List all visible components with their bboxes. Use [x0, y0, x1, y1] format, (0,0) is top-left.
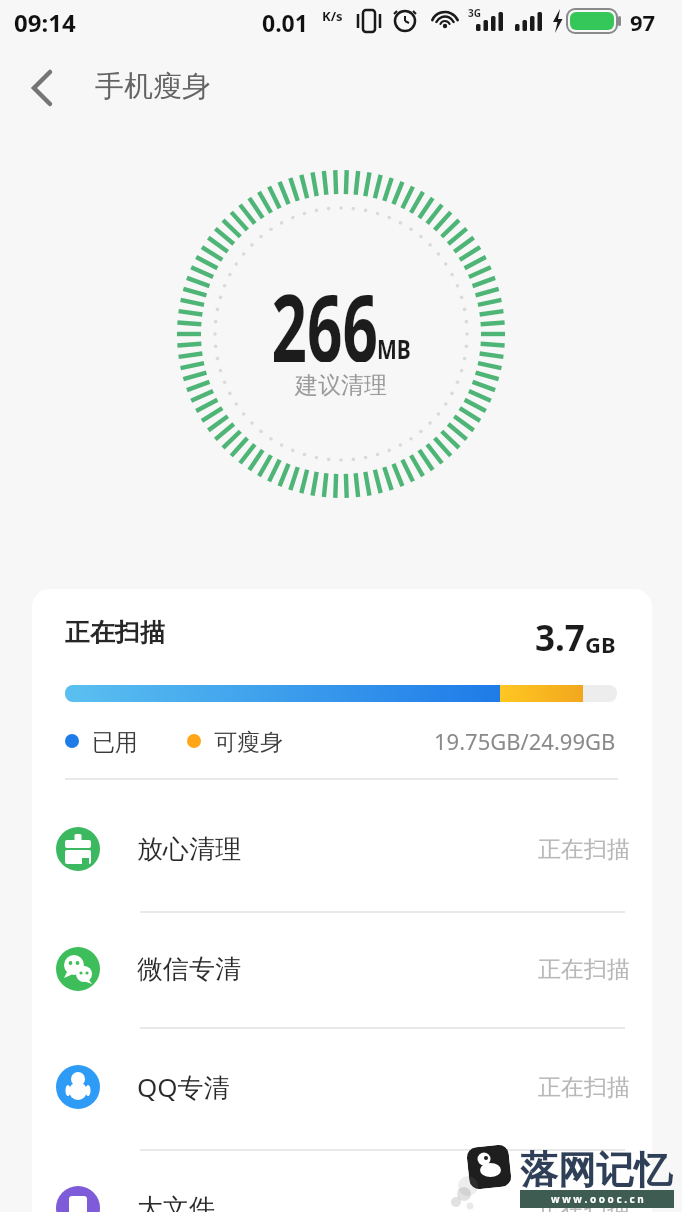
staticText: 266 [271, 262, 378, 362]
staticText: 3G [468, 6, 481, 20]
staticText: K/s [322, 7, 343, 25]
staticText: 正在扫描 [538, 1073, 630, 1102]
staticText: 可瘦身 [214, 728, 283, 754]
staticText: 正在扫描 [538, 1194, 630, 1212]
button[interactable] [14, 60, 70, 116]
staticText: 微信专清 [137, 953, 241, 986]
staticText: 大文件 [137, 1192, 215, 1212]
staticText: 09:14 [14, 6, 76, 39]
staticText: 手机瘦身 [95, 68, 211, 105]
button[interactable]: QQ专清 [32, 1027, 652, 1147]
staticText: 已用 [92, 728, 138, 754]
staticText: 正在扫描 [538, 835, 630, 864]
staticText: 97 [630, 7, 656, 37]
staticText: 正在扫描 [65, 617, 165, 648]
staticText: MB [377, 330, 411, 367]
staticText: QQ专清 [137, 1069, 230, 1105]
staticText: 建议清理 [295, 371, 387, 400]
staticText: 落网记忆 [520, 1146, 672, 1194]
button[interactable]: 微信专清 [32, 909, 652, 1029]
button[interactable]: 放心清理 [32, 789, 652, 909]
staticText: 0.01 [262, 7, 308, 38]
staticText: 19.75GB/24.99GB [434, 726, 616, 754]
staticText: w w w . o o o c . c n [551, 1192, 644, 1206]
staticText: 3.7 [535, 614, 585, 662]
staticText: 正在扫描 [538, 955, 630, 984]
staticText: 放心清理 [137, 833, 241, 866]
button[interactable]: 大文件 [32, 1148, 652, 1212]
staticText: GB [585, 629, 616, 659]
